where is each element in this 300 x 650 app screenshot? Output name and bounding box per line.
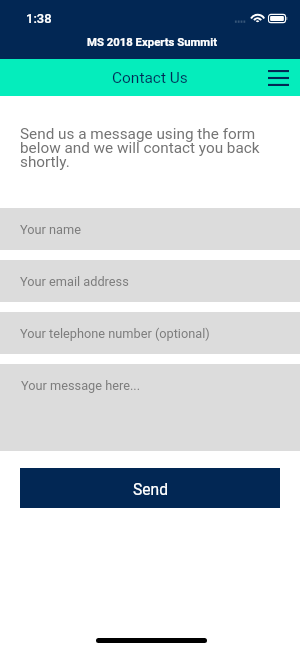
staticText: Send us a message using the form below a… [20,125,274,171]
staticText: Your name [20,222,81,237]
staticText: Contact Us [112,69,188,87]
button[interactable]: Your message here... [0,364,300,451]
button[interactable]: Your email address [0,260,300,302]
button[interactable]: Your name [0,208,300,250]
button[interactable]: Open navigation menu [260,59,297,96]
staticText: MS 2018 Experts Summit [87,35,217,48]
button[interactable]: Send [20,468,280,508]
staticText: Your telephone number (optional) [20,326,210,341]
staticText: Your message here... [21,378,140,393]
button[interactable]: Your telephone number (optional) [0,312,300,354]
staticText: 1:38 [26,11,52,26]
staticText: Your email address [20,274,129,289]
staticText: Send [133,481,168,499]
